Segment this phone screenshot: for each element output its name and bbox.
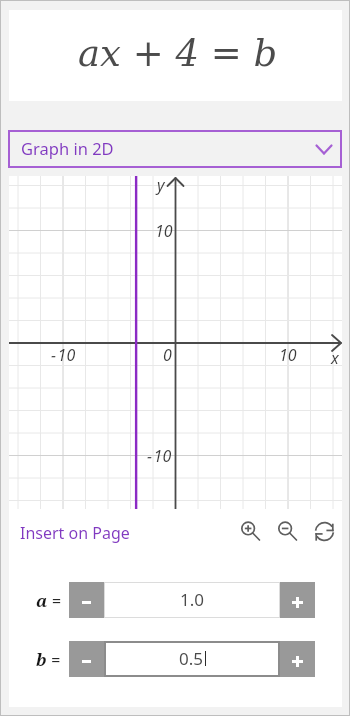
staticText: 1.0 [180,588,205,611]
staticText: − 10 [147,445,172,467]
staticText: Graph in 2D [21,137,114,159]
staticText: Insert on Page [20,522,130,544]
button[interactable]: Graph in 2D [8,130,342,168]
staticText: 0 [163,344,172,366]
button[interactable]: Zoom in [239,519,260,540]
button[interactable]: Increase a [280,582,315,618]
staticText: 0.5 [179,647,204,670]
button[interactable]: Decrease b [69,641,104,677]
staticText: ax + 4 = b [78,32,278,75]
button[interactable]: Increase b [280,641,315,677]
button[interactable]: Zoom out [276,519,297,540]
button[interactable]: Reset view [314,521,335,542]
staticText: − 10 [51,344,76,366]
staticText: 10 [155,220,173,242]
staticText: a = [36,589,62,612]
button[interactable]: Decrease a [69,582,104,618]
button[interactable]: Insert on Page [13,518,137,548]
staticText: 10 [279,344,297,366]
staticText: x [331,347,339,369]
staticText: b = [36,648,61,671]
staticText: y [157,174,165,196]
